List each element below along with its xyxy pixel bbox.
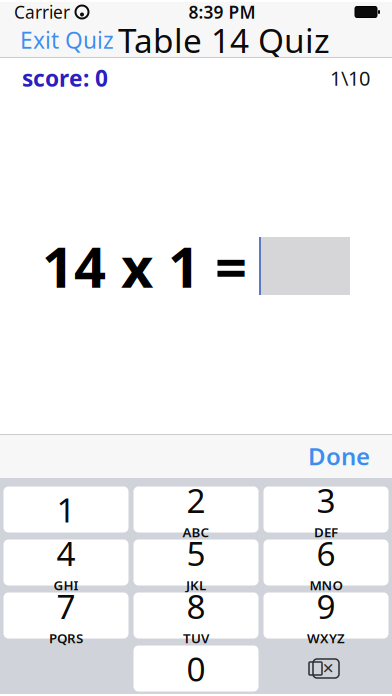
staticText: 8:39 PM	[188, 0, 255, 23]
button[interactable]: 3	[263, 486, 388, 532]
staticText: 1	[56, 487, 75, 532]
staticText: 0	[186, 646, 205, 691]
button[interactable]: 6	[263, 539, 388, 585]
button[interactable]: Delete	[263, 645, 388, 691]
staticText: 4	[56, 531, 75, 575]
staticText: MNO	[309, 576, 342, 594]
staticText: 8	[186, 584, 205, 628]
button[interactable]: Exit Quiz	[14, 17, 120, 63]
staticText: WXYZ	[307, 629, 345, 647]
staticText: 1\10	[330, 65, 370, 91]
button[interactable]: 7	[3, 592, 128, 638]
staticText: ABC	[182, 523, 209, 541]
staticText: TUV	[183, 629, 209, 647]
button[interactable]: 5	[133, 539, 258, 585]
staticText: 2	[186, 478, 205, 522]
button[interactable]: 0	[133, 645, 258, 691]
button[interactable]: 1	[3, 486, 128, 532]
button[interactable]: 9	[263, 592, 388, 638]
staticText: Exit Quiz	[20, 25, 114, 55]
staticText: Table 14 Quiz	[118, 18, 330, 62]
staticText: ✕	[322, 660, 334, 677]
staticText: 5	[186, 531, 205, 575]
staticText: 14 x 1 =	[42, 229, 247, 303]
staticText: GHI	[53, 576, 78, 594]
staticText: 9	[316, 584, 335, 628]
button[interactable]: 2	[133, 486, 258, 532]
staticText: Carrier	[14, 0, 70, 23]
staticText: Done	[308, 440, 370, 472]
button[interactable]: 8	[133, 592, 258, 638]
staticText: 3	[316, 478, 335, 522]
staticText: 7	[56, 584, 75, 628]
button[interactable]: Done	[298, 432, 380, 480]
staticText: DEF	[314, 523, 338, 541]
staticText: 6	[316, 531, 335, 575]
staticText: score: 0	[22, 63, 108, 93]
staticText: PQRS	[49, 629, 83, 647]
button[interactable]: 4	[3, 539, 128, 585]
staticText: JKL	[186, 576, 206, 594]
